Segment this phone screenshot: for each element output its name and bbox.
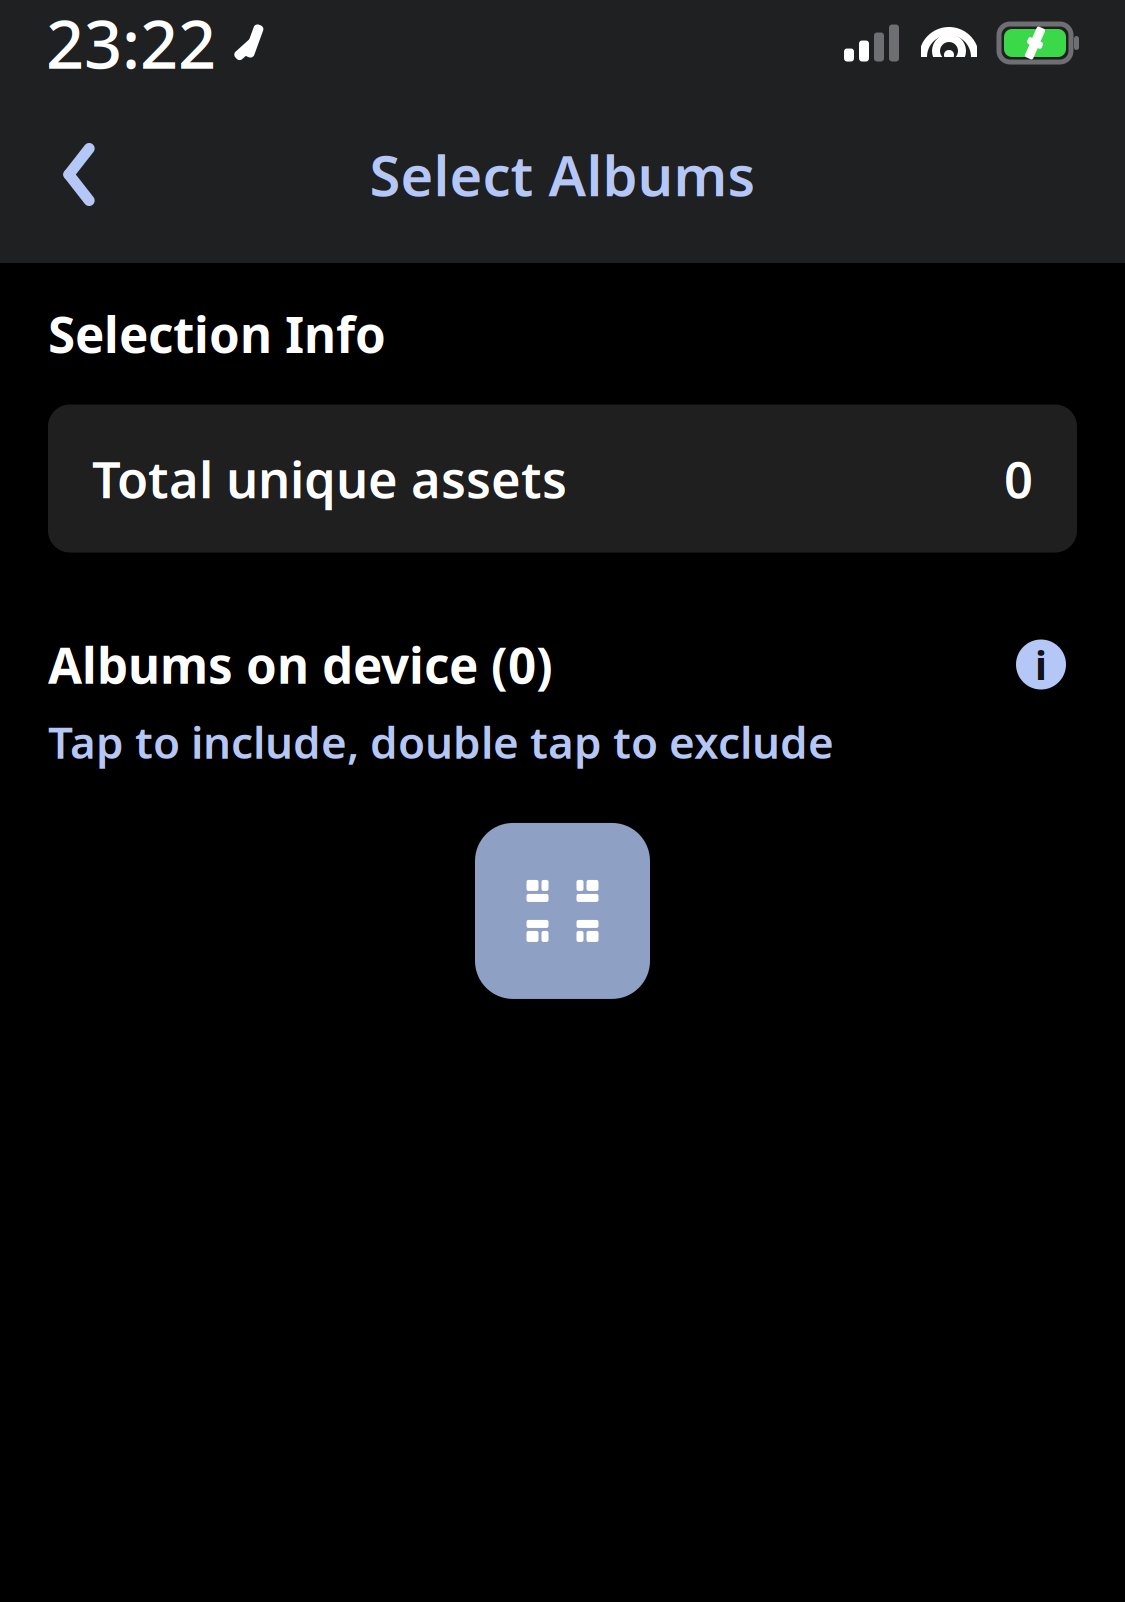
button[interactable]: Info bbox=[1005, 628, 1077, 700]
staticText: 23:22 bbox=[46, 0, 216, 87]
staticText: Select Albums bbox=[369, 137, 755, 212]
staticText: Selection Info bbox=[48, 301, 386, 366]
staticText: Tap to include, double tap to exclude bbox=[48, 712, 834, 771]
staticText: Total unique assets bbox=[92, 445, 567, 512]
staticText: Albums on device (0) bbox=[48, 632, 553, 697]
staticText: i bbox=[1035, 638, 1047, 691]
staticText: 0 bbox=[1004, 445, 1033, 512]
button[interactable]: Back bbox=[24, 119, 134, 229]
